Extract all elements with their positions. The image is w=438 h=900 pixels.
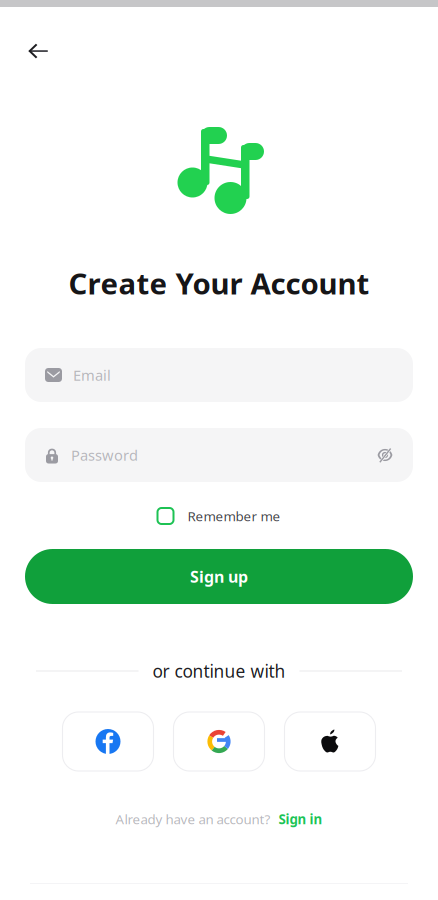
staticText: Sign in [278, 810, 322, 828]
button[interactable]: Sign up with Google [173, 712, 264, 771]
button[interactable]: Remember me [157, 505, 280, 527]
staticText: Password [71, 445, 138, 465]
staticText: or continue with [152, 659, 285, 682]
button[interactable]: Sign in [278, 810, 322, 828]
button[interactable]: Back [16, 29, 60, 73]
staticText: Email [73, 365, 111, 385]
staticText: Remember me [187, 507, 280, 525]
button[interactable]: Sign up [25, 549, 413, 604]
button[interactable]: Sign up with Apple [284, 712, 375, 771]
staticText: Create Your Account [68, 263, 369, 302]
staticText: Sign up [190, 566, 248, 587]
button[interactable]: Sign up with Facebook [62, 712, 153, 771]
staticText: Already have an account? [115, 810, 270, 828]
button[interactable]: Show password [377, 447, 393, 462]
